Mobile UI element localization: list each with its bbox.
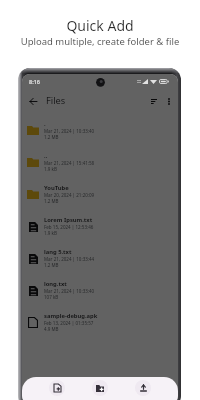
button[interactable]: long.txt	[22, 274, 178, 306]
button[interactable]: More options	[162, 94, 176, 108]
staticText: Files	[46, 94, 66, 107]
button[interactable]: lang 5.txt	[22, 242, 178, 274]
staticText: 4.9 MB	[44, 326, 59, 332]
staticText: Feb 13, 2024 | 01:35:57	[44, 320, 94, 326]
button[interactable]: New file	[49, 380, 65, 396]
staticText: Quick Add	[0, 16, 200, 35]
button[interactable]: Sort	[147, 94, 161, 108]
staticText: Mar 21, 2024 | 10:33:40	[44, 128, 95, 134]
button[interactable]: Back	[26, 94, 40, 108]
staticText: .	[44, 120, 46, 128]
staticText: Feb 15, 2024 | 12:53:46	[44, 224, 94, 230]
staticText: 107 kB	[44, 294, 59, 300]
staticText: Upload multiple, create folder & file	[0, 35, 200, 48]
staticText: 1.9 kB	[44, 230, 57, 236]
staticText: Mar 21, 2024 | 10:33:44	[44, 256, 95, 262]
button[interactable]: sample-debug.apk	[22, 306, 178, 338]
button[interactable]: New folder	[92, 380, 108, 396]
button[interactable]: YouTube	[22, 178, 178, 210]
button[interactable]: Lorem Ipsum.txt	[22, 210, 178, 242]
staticText: 1.2 MB	[44, 198, 59, 204]
staticText: Mar 20, 2024 | 21:20:09	[44, 192, 95, 198]
staticText: Mar 21, 2024 | 15:41:58	[44, 160, 95, 166]
staticText: ..	[44, 152, 48, 160]
staticText: 1.9 kB	[44, 166, 57, 172]
staticText: Lorem Ipsum.txt	[44, 216, 93, 224]
staticText: 1.2 MB	[44, 134, 59, 140]
staticText: 1.2 MB	[44, 262, 59, 268]
button[interactable]: Upload	[135, 380, 151, 396]
staticText: Mar 21, 2024 | 10:33:40	[44, 288, 95, 294]
staticText: sample-debug.apk	[44, 312, 98, 320]
staticText: long.txt	[44, 280, 67, 288]
staticText: 8:16	[29, 78, 40, 85]
staticText: YouTube	[44, 184, 69, 192]
staticText: lang 5.txt	[44, 248, 72, 256]
button[interactable]: ..	[22, 146, 178, 178]
button[interactable]: .	[22, 114, 178, 146]
